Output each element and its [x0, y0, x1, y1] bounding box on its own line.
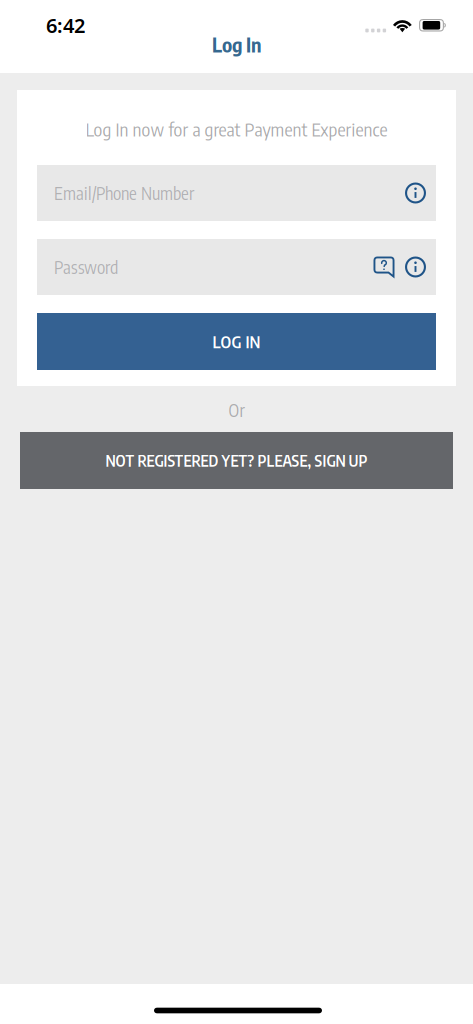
- button[interactable]: NOT REGISTERED YET? PLEASE, SIGN UP: [20, 432, 453, 489]
- staticText: NOT REGISTERED YET? PLEASE, SIGN UP: [105, 451, 367, 470]
- staticText: Password: [54, 256, 118, 278]
- button[interactable]: Password: [37, 239, 436, 295]
- staticText: Log In now for a great Payment Experienc…: [85, 118, 387, 140]
- button[interactable]: About email or phone number: [400, 165, 431, 221]
- staticText: Or: [228, 399, 244, 421]
- staticText: LOG IN: [212, 331, 260, 352]
- button[interactable]: LOG IN: [37, 313, 436, 370]
- button[interactable]: Forgot password help: [368, 239, 400, 295]
- staticText: 6:42: [46, 12, 85, 39]
- staticText: Log In: [212, 32, 261, 57]
- button[interactable]: Email/Phone Number: [37, 165, 436, 221]
- staticText: Email/Phone Number: [54, 182, 194, 204]
- button[interactable]: About password: [400, 239, 431, 295]
